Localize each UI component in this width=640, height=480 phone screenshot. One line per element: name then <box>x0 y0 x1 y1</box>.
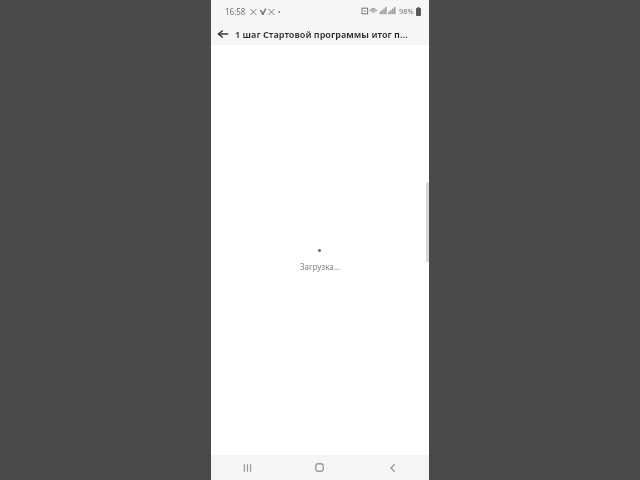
staticText: 98% <box>399 6 414 16</box>
button[interactable]: Recents <box>211 455 283 480</box>
staticText: Загрузка... <box>300 261 341 272</box>
button[interactable]: Back <box>356 455 429 480</box>
button[interactable]: Back <box>211 22 235 45</box>
button[interactable]: Home <box>283 455 356 480</box>
staticText: 1 шаг Стартовой программы итог п… <box>235 28 408 40</box>
staticText: 16:58 <box>225 6 246 17</box>
